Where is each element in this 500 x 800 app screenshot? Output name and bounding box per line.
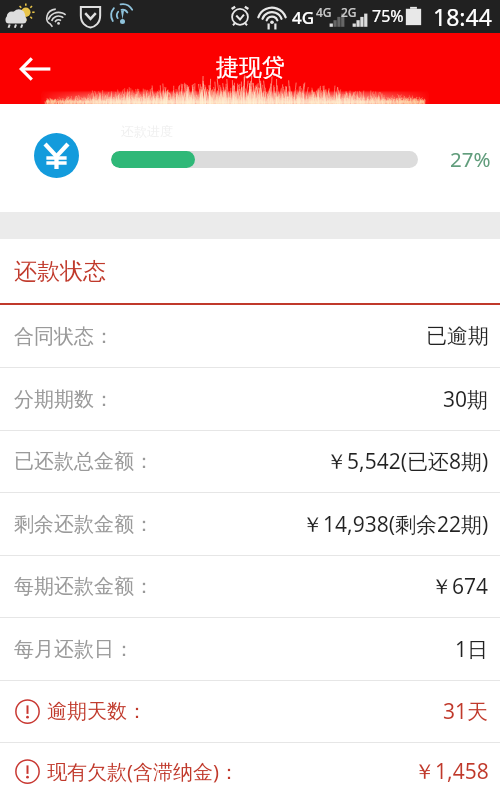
staticText: 4G [292,6,315,29]
button[interactable]: 合同状态： [0,305,500,367]
staticText: 合同状态： [14,324,114,349]
staticText: 18:44 [433,1,492,32]
button[interactable]: 逾期天数： [0,681,500,742]
staticText: 75% [372,5,404,27]
button[interactable]: 已还款总金额： [0,431,500,492]
staticText: 还款进度 [121,123,173,139]
button[interactable]: 每期还款金额： [0,556,500,617]
button[interactable]: Back [12,46,58,92]
staticText: 2G [341,4,357,20]
staticText: ￥1,458 [414,757,489,786]
staticText: 每期还款金额： [14,574,154,599]
staticText: 捷现贷 [216,53,285,82]
button[interactable]: 分期期数： [0,368,500,430]
staticText: ￥14,938(剩余22期) [302,510,489,539]
button[interactable]: 每月还款日： [0,618,500,680]
staticText: 已逾期 [426,323,489,349]
staticText: 剩余还款金额： [14,512,154,537]
button[interactable]: 剩余还款金额： [0,493,500,555]
staticText: 已还款总金额： [14,449,154,474]
staticText: 每月还款日： [14,637,134,662]
staticText: 逾期天数： [47,699,147,724]
staticText: 31天 [443,697,489,726]
staticText: 现有欠款(含滞纳金)： [47,758,239,785]
staticText: 还款状态 [14,257,106,286]
staticText: 30期 [443,385,489,414]
staticText: ￥674 [431,572,489,601]
staticText: 27% [450,145,491,173]
button[interactable]: 现有欠款(含滞纳金)： [0,743,500,800]
staticText: 分期期数： [14,387,114,412]
staticText: ￥5,542(已还8期) [326,447,489,476]
staticText: 4G [316,4,332,20]
staticText: 1日 [455,635,489,664]
